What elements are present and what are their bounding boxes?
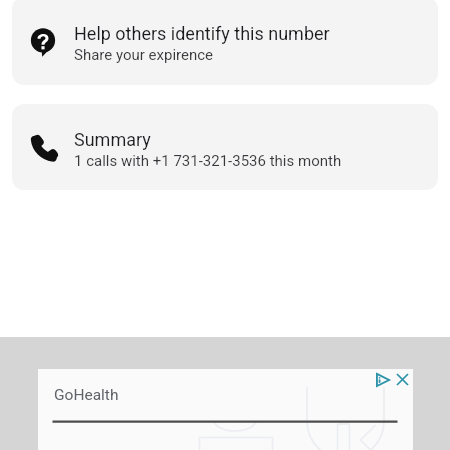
button[interactable]: Help others identify this number: [12, 0, 438, 85]
button[interactable]: GoHealth: [38, 369, 413, 450]
button[interactable]: Ad choices: [370, 367, 396, 393]
staticText: GoHealth: [54, 386, 119, 404]
staticText: 1 calls with +1 731-321-3536 this month: [74, 152, 342, 170]
staticText: Share your expirence: [74, 46, 214, 64]
button[interactable]: Summary: [12, 104, 438, 190]
button[interactable]: Close ad: [390, 367, 414, 391]
staticText: Help others identify this number: [74, 23, 330, 44]
staticText: Summary: [74, 129, 151, 150]
